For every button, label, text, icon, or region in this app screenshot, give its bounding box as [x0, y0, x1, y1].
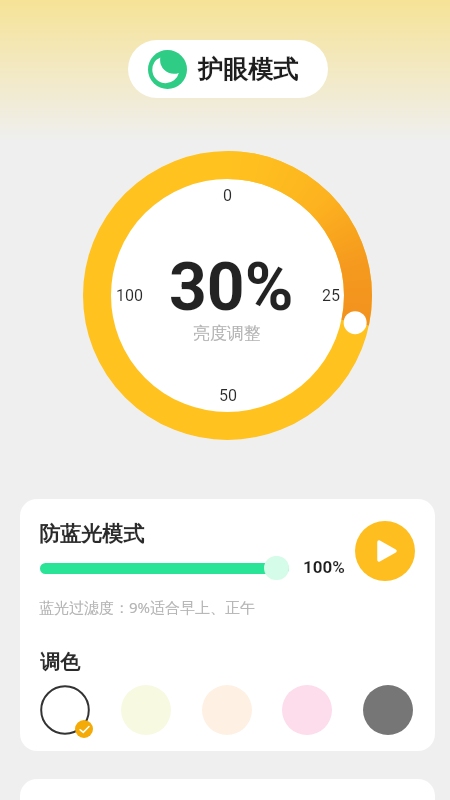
staticText: 护眼模式: [198, 54, 298, 85]
button[interactable]: Play: [355, 521, 415, 581]
button[interactable]: [121, 685, 171, 735]
button[interactable]: [363, 685, 413, 735]
staticText: 100%: [303, 557, 345, 577]
staticText: 100: [116, 286, 143, 305]
staticText: 0: [223, 186, 232, 205]
staticText: 调色: [40, 650, 80, 675]
staticText: 防蓝光模式: [39, 521, 144, 547]
staticText: 30%: [169, 249, 294, 326]
staticText: 亮度调整: [193, 323, 261, 344]
button[interactable]: [40, 685, 90, 735]
staticText: 50: [219, 386, 237, 405]
staticText: 25: [322, 286, 340, 305]
button[interactable]: [282, 685, 332, 735]
button[interactable]: 护眼模式: [128, 40, 328, 98]
staticText: 蓝光过滤度：9%适合早上、正午: [39, 597, 256, 617]
button[interactable]: [202, 685, 252, 735]
